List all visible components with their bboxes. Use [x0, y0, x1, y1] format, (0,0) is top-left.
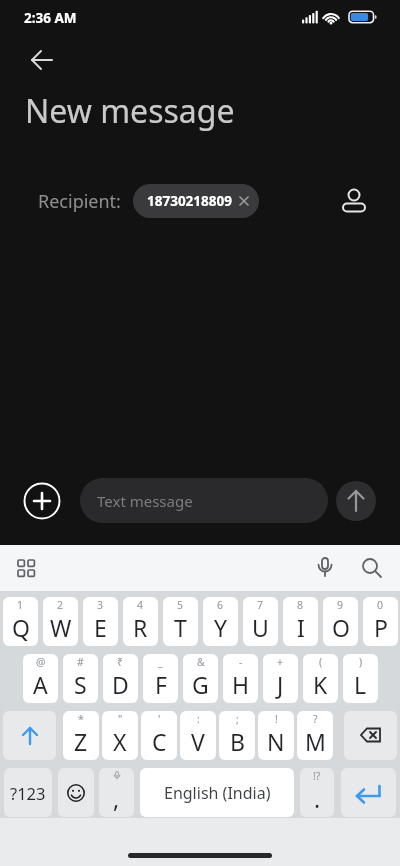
- staticText: R: [133, 612, 148, 643]
- staticText: C: [152, 726, 167, 757]
- staticText: L: [354, 669, 367, 700]
- staticText: M: [305, 726, 326, 757]
- button[interactable]: English (India): [140, 768, 294, 817]
- button[interactable]: *: [63, 711, 99, 760]
- button[interactable]: !?: [300, 768, 334, 817]
- button[interactable]: 4: [123, 597, 158, 646]
- staticText: ?: [313, 712, 318, 726]
- button[interactable]: +: [263, 654, 298, 703]
- staticText: 7: [257, 598, 264, 612]
- staticText: Text message: [97, 491, 193, 511]
- button[interactable]: ,: [99, 768, 134, 817]
- button[interactable]: @: [23, 654, 58, 703]
- button[interactable]: 9: [323, 597, 358, 646]
- staticText: J: [277, 669, 284, 700]
- staticText: (: [319, 655, 323, 669]
- staticText: I: [297, 612, 305, 643]
- staticText: 18730218809: [147, 192, 232, 210]
- staticText: K: [313, 669, 328, 700]
- staticText: D: [112, 669, 129, 700]
- staticText: B: [230, 726, 245, 757]
- staticText: 1: [17, 598, 24, 612]
- button[interactable]: [13, 555, 39, 581]
- staticText: 5: [177, 598, 184, 612]
- button[interactable]: ?123: [4, 768, 52, 817]
- staticText: V: [191, 726, 205, 757]
- button[interactable]: 6: [203, 597, 238, 646]
- staticText: F: [155, 669, 167, 700]
- button[interactable]: ₹: [103, 654, 138, 703]
- staticText: !?: [313, 769, 321, 783]
- button[interactable]: ;: [219, 711, 255, 760]
- button[interactable]: ': [141, 711, 177, 760]
- button[interactable]: [3, 711, 56, 760]
- staticText: Y: [214, 612, 228, 643]
- staticText: W: [50, 612, 72, 643]
- staticText: P: [374, 612, 388, 643]
- button[interactable]: 1: [3, 597, 38, 646]
- staticText: ,: [113, 783, 120, 814]
- button[interactable]: :: [180, 711, 216, 760]
- staticText: Recipient:: [38, 189, 121, 214]
- staticText: +: [277, 655, 284, 669]
- staticText: T: [174, 612, 187, 643]
- staticText: New message: [25, 89, 235, 133]
- button[interactable]: [359, 555, 385, 581]
- button[interactable]: 5: [163, 597, 198, 646]
- staticText: E: [94, 612, 107, 643]
- staticText: A: [33, 669, 48, 700]
- button[interactable]: #: [63, 654, 98, 703]
- staticText: U: [252, 612, 269, 643]
- button[interactable]: [341, 768, 396, 817]
- staticText: Q: [12, 612, 30, 643]
- staticText: English (India): [164, 782, 271, 804]
- staticText: ): [359, 655, 363, 669]
- staticText: 6: [217, 598, 224, 612]
- button[interactable]: 0: [363, 597, 398, 646]
- staticText: !: [275, 712, 278, 726]
- staticText: O: [332, 612, 350, 643]
- button[interactable]: ?: [297, 711, 333, 760]
- button[interactable]: ": [102, 711, 138, 760]
- button[interactable]: 2: [43, 597, 78, 646]
- button[interactable]: 8: [283, 597, 318, 646]
- staticText: #: [77, 655, 84, 669]
- staticText: 2: [57, 598, 64, 612]
- button[interactable]: &: [183, 654, 218, 703]
- button[interactable]: 3: [83, 597, 118, 646]
- staticText: ₹: [117, 655, 124, 669]
- staticText: _: [158, 655, 163, 669]
- staticText: :: [197, 712, 200, 726]
- button[interactable]: [23, 482, 61, 520]
- staticText: ": [118, 712, 123, 726]
- button[interactable]: _: [143, 654, 178, 703]
- button[interactable]: 18730218809: [133, 184, 259, 218]
- button[interactable]: 7: [243, 597, 278, 646]
- staticText: S: [74, 669, 87, 700]
- staticText: ;: [236, 712, 239, 726]
- staticText: 0: [377, 598, 384, 612]
- button[interactable]: [341, 188, 367, 214]
- button[interactable]: [28, 46, 56, 74]
- button[interactable]: [312, 555, 338, 581]
- button[interactable]: [336, 481, 376, 521]
- staticText: 8: [297, 598, 304, 612]
- staticText: *: [78, 712, 84, 726]
- staticText: X: [113, 726, 127, 757]
- staticText: ': [158, 712, 161, 726]
- staticText: -: [239, 655, 243, 669]
- staticText: 4: [137, 598, 144, 612]
- button[interactable]: -: [223, 654, 258, 703]
- button[interactable]: Text message: [80, 478, 328, 523]
- staticText: ?123: [10, 782, 46, 804]
- staticText: G: [192, 669, 209, 700]
- button[interactable]: ): [343, 654, 378, 703]
- button[interactable]: [344, 711, 397, 760]
- staticText: Z: [74, 726, 88, 757]
- staticText: &: [197, 655, 205, 669]
- button[interactable]: [58, 768, 94, 817]
- button[interactable]: (: [303, 654, 338, 703]
- staticText: .: [314, 783, 321, 814]
- button[interactable]: !: [258, 711, 294, 760]
- staticText: H: [232, 669, 250, 700]
